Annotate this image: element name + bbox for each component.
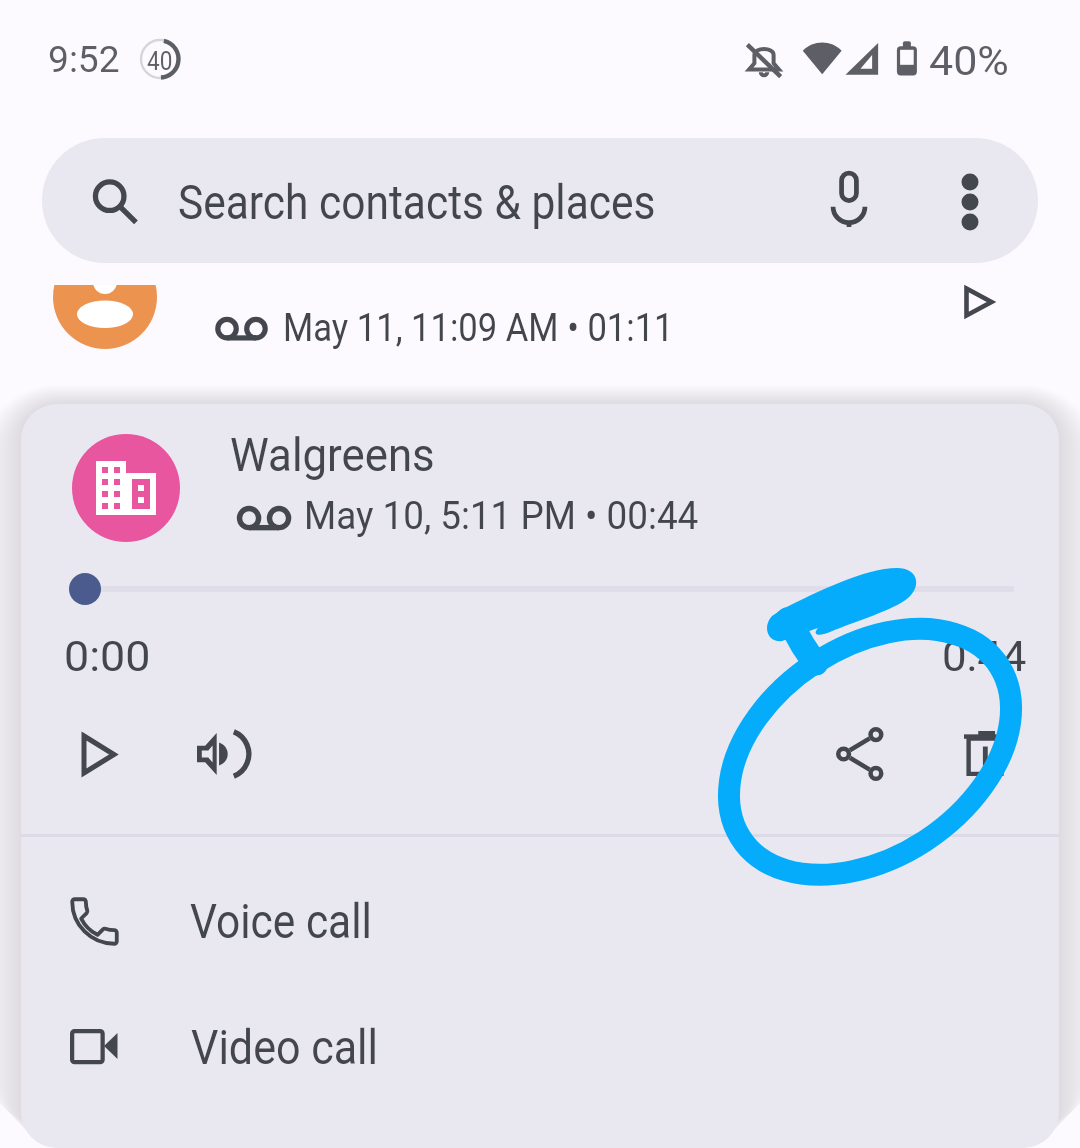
button[interactable] <box>21 837 1059 969</box>
button[interactable] <box>0 285 1080 357</box>
button[interactable]: Delete <box>929 700 1041 812</box>
button[interactable]: More options <box>929 159 1011 241</box>
staticText: 40 <box>147 47 173 76</box>
button[interactable]: Voice search <box>808 159 890 241</box>
staticText: Video call <box>191 1019 379 1076</box>
button[interactable] <box>21 969 1059 1101</box>
staticText: Walgreens <box>230 427 435 482</box>
staticText: 0:44 <box>942 632 1027 681</box>
button[interactable]: Voice search <box>42 138 1038 263</box>
staticText: Voice call <box>190 893 373 950</box>
button[interactable]: Play <box>44 700 156 812</box>
staticText: Search contacts & places <box>178 174 656 230</box>
staticText: May 11, 11:09 AM • 01:11 <box>283 305 674 351</box>
staticText: 40% <box>929 38 1009 85</box>
button[interactable]: Speaker <box>162 700 274 812</box>
staticText: 9:52 <box>48 37 120 81</box>
staticText: May 10, 5:11 PM • 00:44 <box>304 493 699 539</box>
staticText: 0:00 <box>64 632 151 681</box>
button[interactable]: Share <box>801 700 913 812</box>
